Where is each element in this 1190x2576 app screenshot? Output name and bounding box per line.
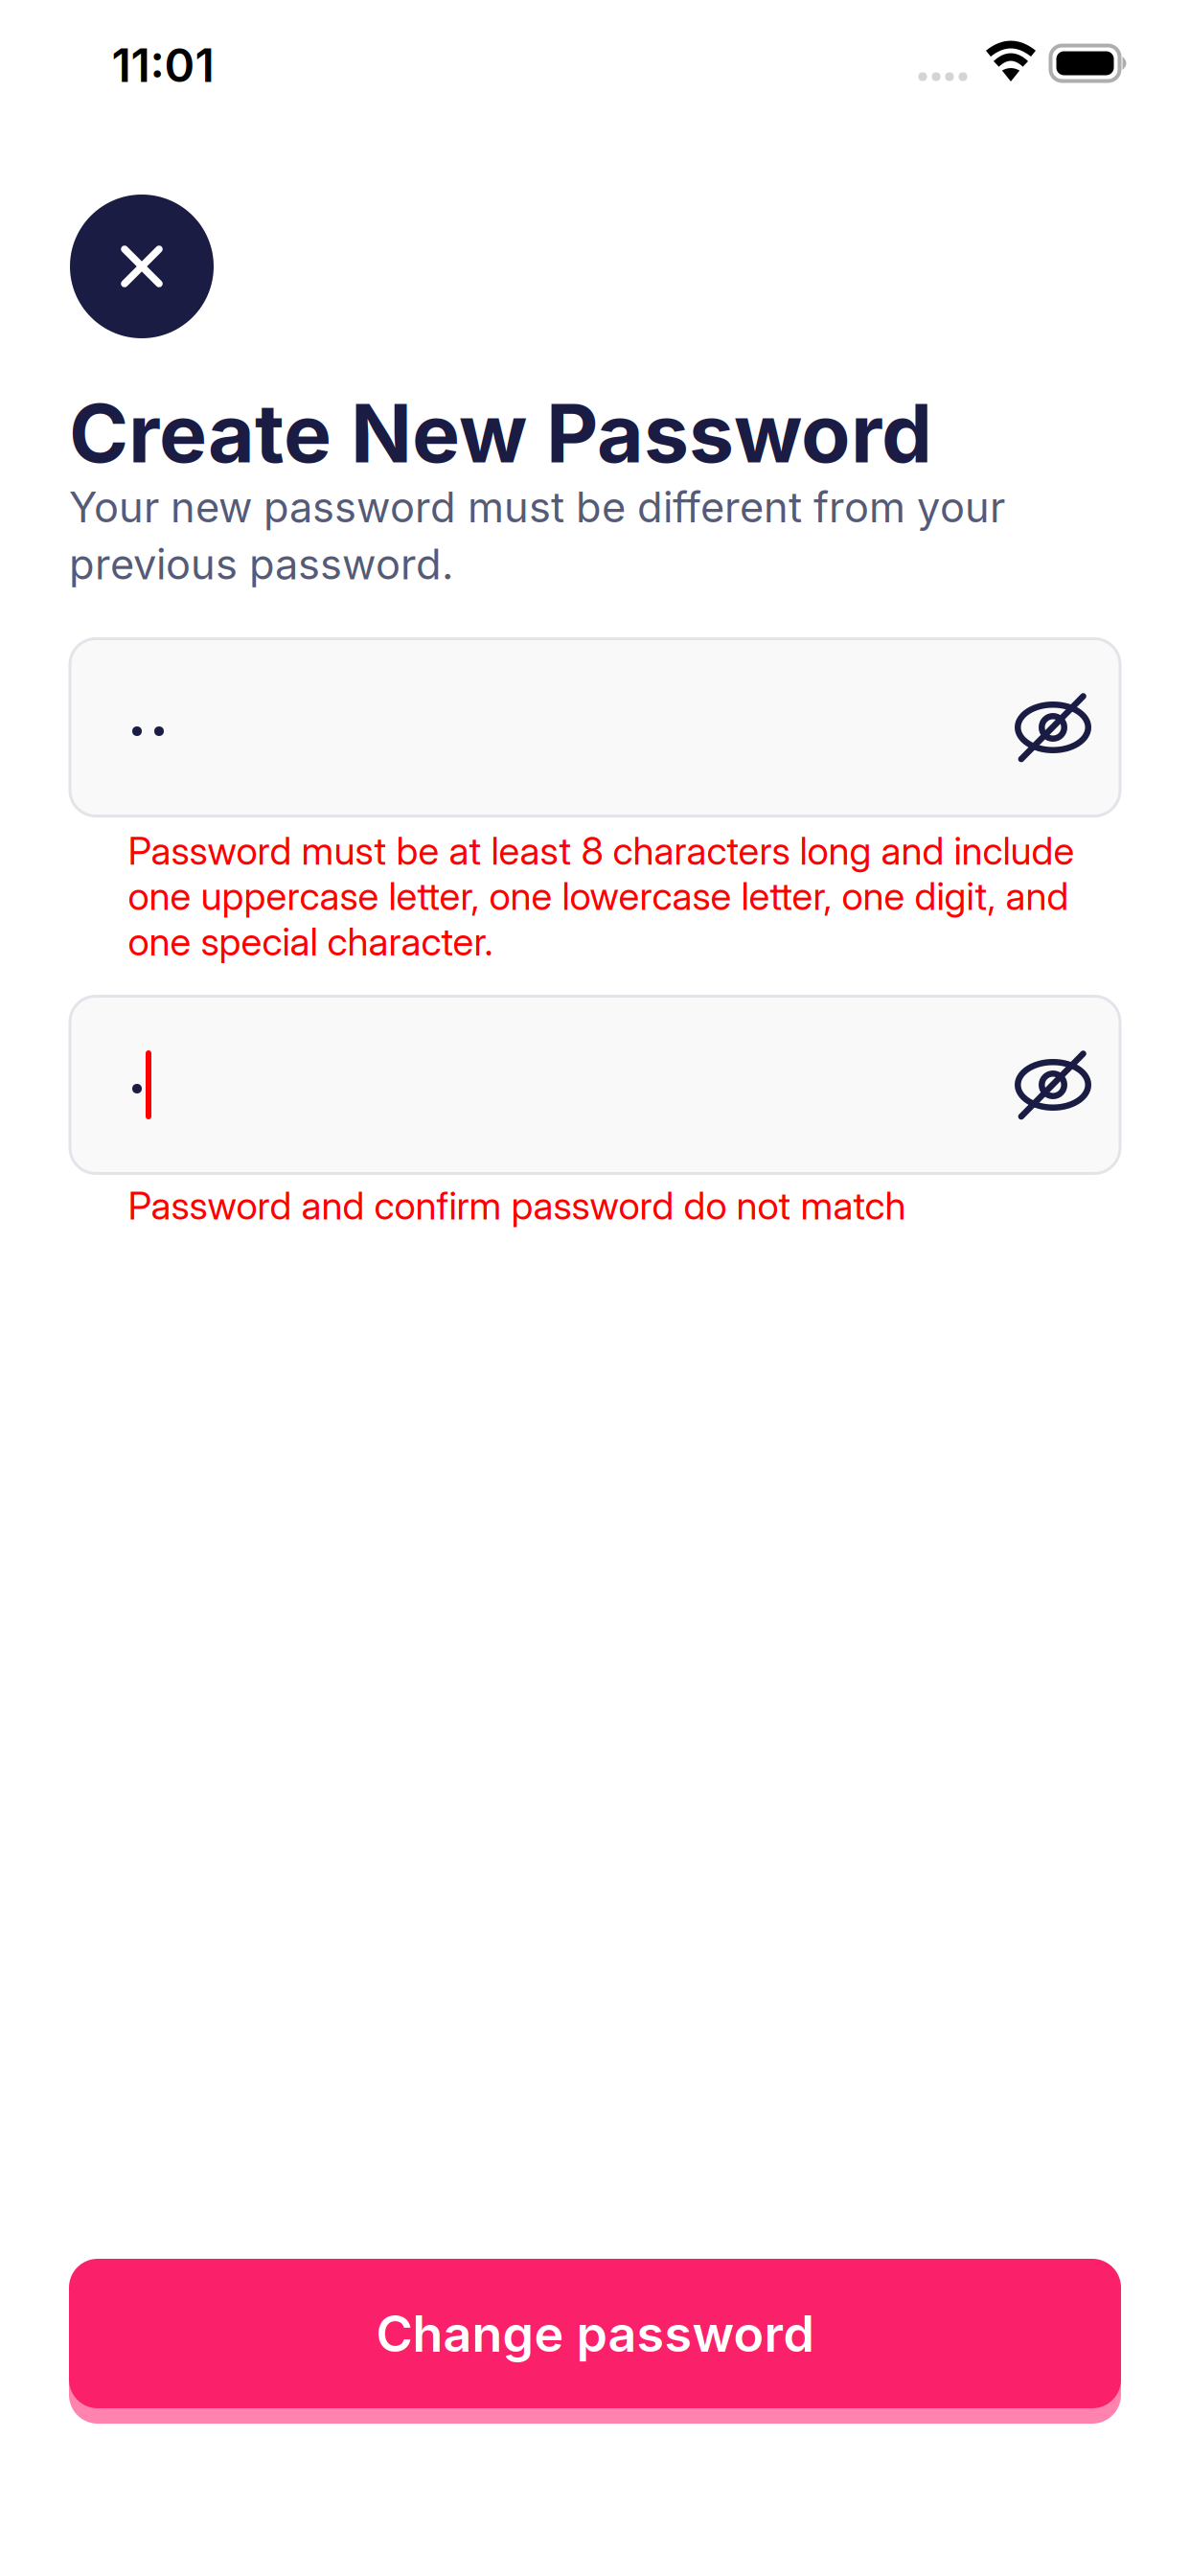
button[interactable]: Change password bbox=[69, 2251, 1121, 2416]
button[interactable]: Show password bbox=[986, 639, 1120, 816]
button[interactable]: Close bbox=[70, 195, 214, 338]
staticText: Your new password must be different from… bbox=[69, 482, 1005, 589]
staticText: Create New Password bbox=[69, 384, 932, 482]
button[interactable]: Show password bbox=[986, 996, 1120, 1173]
staticText: Change password bbox=[376, 2303, 814, 2364]
staticText: Password and confirm password do not mat… bbox=[128, 1182, 906, 1229]
staticText: 11:01 bbox=[112, 37, 214, 93]
staticText: Password must be at least 8 characters l… bbox=[128, 827, 1075, 965]
